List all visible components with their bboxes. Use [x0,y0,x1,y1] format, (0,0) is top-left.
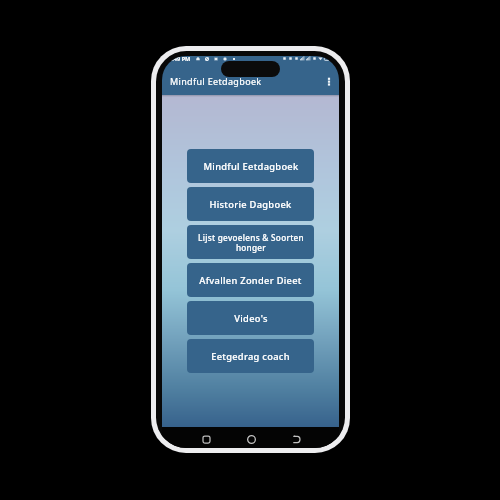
button[interactable]: More options [319,72,339,92]
staticText: Eetgedrag coach [211,350,290,363]
button[interactable]: Video's [187,301,314,335]
button[interactable]: Lijst gevoelens & Soorten honger [187,225,314,259]
staticText: Mindful Eetdagboek [170,75,262,87]
button[interactable]: Eetgedrag coach [187,339,314,373]
staticText: Mindful Eetdagboek [203,160,299,173]
button[interactable]: Afvallen Zonder Dieet [187,263,314,297]
staticText: Lijst gevoelens & Soorten honger [198,232,304,253]
staticText: Video's [234,312,268,325]
staticText: Historie Dagboek [209,198,292,211]
button[interactable]: Historie Dagboek [187,187,314,221]
button[interactable]: Home [241,429,261,448]
button[interactable]: Recents [196,429,216,448]
button[interactable]: Mindful Eetdagboek [187,149,314,183]
staticText: Afvallen Zonder Dieet [199,274,302,287]
button[interactable]: Back [286,429,306,448]
staticText: 4:49 PM [169,56,191,63]
